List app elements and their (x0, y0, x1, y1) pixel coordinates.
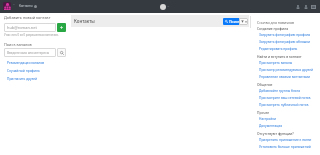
staticText: ~ (13, 3, 15, 7)
staticText: Введите имя или интересы (7, 51, 50, 55)
button[interactable]: Редактировать профиль (259, 47, 298, 51)
staticText: Добавить новый контакт (4, 15, 51, 20)
staticText: hub@roman.net (7, 25, 37, 30)
staticText: Управление своими контактами (259, 75, 311, 79)
button[interactable]: Управление своими контактами (259, 75, 311, 79)
staticText: Создание профиля (257, 26, 289, 30)
staticText: Документация (259, 124, 283, 128)
button[interactable]: Документация (259, 124, 283, 128)
staticText: Контакты (19, 4, 33, 8)
staticText: Контакты (74, 18, 95, 24)
button[interactable]: Filter (239, 18, 248, 25)
staticText: Настройки (259, 117, 277, 121)
button[interactable]: Поиск (223, 18, 242, 25)
button[interactable]: Загрузить фотографию профиля (259, 33, 311, 37)
button[interactable]: Просмотреть каналы (259, 61, 293, 65)
staticText: Просмотреть публичный поток (259, 103, 309, 107)
staticText: Найти и вступить в контакт (257, 54, 302, 58)
button[interactable]: Profile (160, 4, 170, 10)
staticText: У вас есть 0 из 0 разрешенных контактов. (4, 33, 59, 37)
button[interactable]: Add contact (57, 23, 66, 32)
button[interactable]: Просмотреть публичный поток (259, 103, 309, 107)
staticText: Ссылки для новичков (257, 20, 295, 25)
button[interactable]: Menu (310, 3, 317, 10)
button[interactable]: Home (3, 2, 11, 10)
button[interactable]: hub@roman.net (4, 23, 56, 32)
button[interactable]: Пригласить друзей (7, 77, 38, 81)
button[interactable]: Введите имя или интересы (4, 48, 56, 57)
button[interactable]: Загрузить фотографию обложки (259, 40, 310, 44)
button[interactable]: Установить больше приложений (259, 145, 311, 149)
button[interactable]: Добавляйте группы блога (259, 89, 301, 93)
button[interactable]: Случайный профиль (7, 69, 40, 73)
staticText: Прочее (257, 110, 270, 114)
staticText: Отсутствуют функции? (257, 131, 294, 135)
staticText: Редактировать профиль (259, 47, 298, 51)
staticText: Просмотр рекомендуемых друзей (259, 68, 313, 72)
button[interactable]: Messages (302, 3, 309, 10)
staticText: Поиск (229, 19, 240, 24)
staticText: Просмотреть каналы (259, 61, 293, 65)
staticText: Добавляйте группы блога (259, 89, 301, 93)
staticText: Загрузить фотографию профиля (259, 33, 311, 37)
staticText: Установить больше приложений (259, 145, 311, 149)
button[interactable]: Search (57, 48, 66, 57)
staticText: Пригласить друзей (7, 77, 38, 81)
button[interactable]: Notifications (294, 3, 301, 10)
staticText: Поиск каналов (4, 42, 32, 47)
staticText: Загрузить фотографию обложки (259, 40, 310, 44)
button[interactable]: Настройки (259, 117, 277, 121)
staticText: Прикрепить приложение к папке (259, 138, 312, 142)
button[interactable]: Прикрепить приложение к папке (259, 138, 312, 142)
staticText: Случайный профиль (7, 69, 40, 73)
button[interactable]: Рекомендации каналов (7, 61, 45, 65)
button[interactable]: Контакты (19, 4, 37, 8)
button[interactable]: Просмотрите ваш сетевой поток (259, 96, 311, 100)
button[interactable]: Просмотр рекомендуемых друзей (259, 68, 313, 72)
staticText: Просмотрите ваш сетевой поток (259, 96, 311, 100)
staticText: Общение (257, 82, 273, 86)
staticText: Рекомендации каналов (7, 61, 45, 65)
staticText: ··· (167, 5, 170, 9)
